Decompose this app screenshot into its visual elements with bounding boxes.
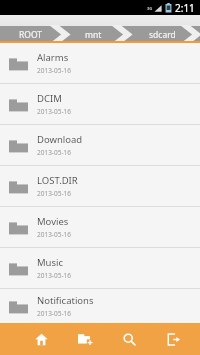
- button[interactable]: Home: [26, 324, 56, 354]
- button[interactable]: Notifications: [0, 289, 200, 323]
- staticText: sdcard: [149, 29, 176, 41]
- staticText: 3G: [147, 6, 153, 11]
- button[interactable]: ROOT: [0, 26, 62, 43]
- staticText: Alarms: [37, 51, 69, 64]
- staticText: Movies: [37, 215, 69, 228]
- staticText: 2013-05-16: [37, 230, 71, 239]
- staticText: 2013-05-16: [37, 309, 71, 318]
- button[interactable]: Movies: [0, 207, 200, 247]
- staticText: Music: [37, 256, 64, 269]
- staticText: LOST.DIR: [37, 174, 78, 187]
- staticText: Notifications: [37, 294, 94, 307]
- button[interactable]: Music: [0, 248, 200, 288]
- button[interactable]: sdcard: [124, 26, 200, 43]
- staticText: DCIM: [37, 92, 62, 105]
- button[interactable]: Search: [114, 324, 144, 354]
- staticText: 2013-05-16: [37, 189, 71, 198]
- staticText: 2013-05-16: [37, 107, 71, 116]
- button[interactable]: Download: [0, 125, 200, 165]
- button[interactable]: mnt: [62, 26, 124, 43]
- staticText: 2013-05-16: [37, 66, 71, 75]
- staticText: 2:11: [175, 1, 195, 15]
- staticText: 2013-05-16: [37, 271, 71, 280]
- staticText: ROOT: [19, 29, 43, 41]
- staticText: 2013-05-16: [37, 148, 71, 157]
- button[interactable]: Alarms: [0, 43, 200, 83]
- button[interactable]: LOST.DIR: [0, 166, 200, 206]
- button[interactable]: DCIM: [0, 84, 200, 124]
- staticText: mnt: [85, 29, 102, 41]
- button[interactable]: Exit: [158, 324, 188, 354]
- staticText: Download: [37, 133, 83, 146]
- button[interactable]: New folder: [70, 324, 100, 354]
